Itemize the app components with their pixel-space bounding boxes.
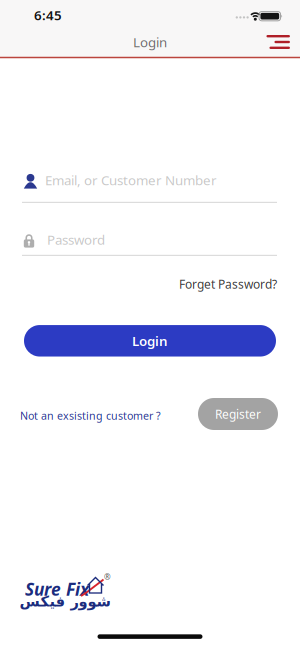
button[interactable]: Login — [24, 325, 276, 357]
staticText: Not an exsisting customer ? — [20, 408, 161, 423]
staticText: Email, or Customer Number — [45, 171, 217, 189]
button[interactable]: Register — [198, 398, 278, 430]
staticText: Forget Password? — [179, 276, 277, 292]
staticText: شوور فيكس — [19, 593, 110, 610]
staticText: ® — [104, 572, 111, 582]
staticText: Password — [47, 231, 105, 248]
button[interactable]: Password — [19, 218, 281, 260]
staticText: Login — [133, 33, 167, 51]
staticText: Sure Fix — [25, 577, 89, 600]
staticText: 6:45 — [34, 6, 62, 24]
button[interactable]: Email, or Customer Number — [19, 162, 281, 204]
staticText: Register — [215, 406, 261, 422]
staticText: Login — [132, 332, 168, 350]
button[interactable]: Forget Password? — [19, 274, 281, 294]
button[interactable] — [263, 32, 293, 52]
